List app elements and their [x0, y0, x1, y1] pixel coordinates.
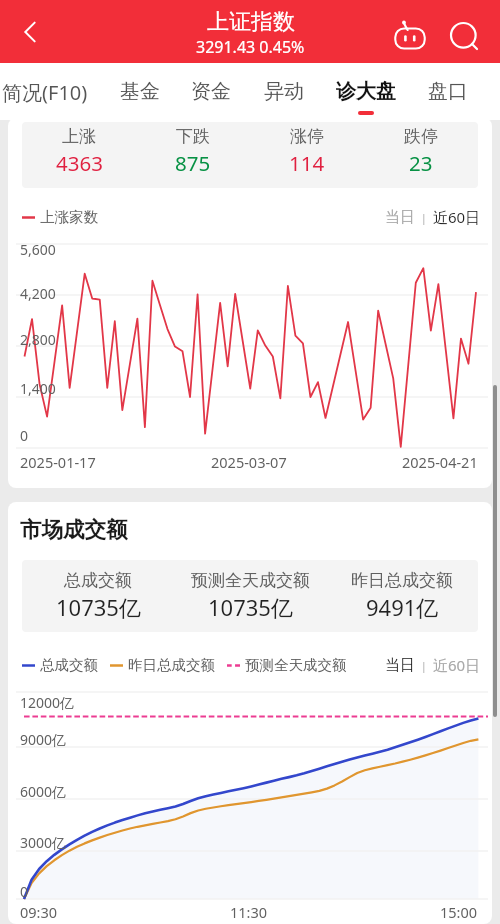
staticText: 3000亿 — [20, 833, 67, 852]
staticText: 15:00 — [440, 902, 478, 922]
staticText: 预测全天成交额 — [191, 570, 310, 591]
button[interactable]: 近60日 — [433, 655, 481, 675]
staticText: 基金 — [120, 79, 160, 104]
staticText: 上证指数 — [207, 8, 295, 36]
staticText: 当日 — [385, 208, 415, 227]
staticText: 11:30 — [230, 902, 268, 922]
button[interactable]: 诊大盘 — [330, 63, 402, 115]
staticText: 诊大盘 — [336, 79, 396, 104]
staticText: 市场成交额 — [20, 516, 128, 543]
staticText: 预测全天成交额 — [245, 656, 347, 674]
staticText: 2025-03-07 — [211, 452, 287, 472]
staticText: 0 — [20, 882, 29, 901]
staticText: 3291.43 0.45% — [196, 36, 305, 58]
staticText: 10735亿 — [208, 592, 293, 622]
staticText: 昨日总成交额 — [351, 570, 453, 591]
staticText: 异动 — [264, 79, 304, 104]
staticText: 2025-01-17 — [20, 452, 96, 472]
staticText: 当日 — [385, 656, 415, 675]
staticText: 上涨家数 — [40, 208, 98, 226]
staticText: 4363 — [56, 149, 103, 177]
staticText: 0 — [20, 426, 29, 445]
staticText: 4,200 — [20, 284, 56, 303]
staticText: 1,400 — [20, 379, 56, 398]
button[interactable]: AI assistant — [386, 0, 434, 63]
staticText: 总成交额 — [40, 656, 98, 674]
button[interactable]: 当日 — [385, 208, 415, 227]
staticText: 23 — [409, 149, 433, 177]
button[interactable]: 简况(F10) — [0, 63, 93, 115]
staticText: | — [415, 658, 433, 673]
staticText: 总成交额 — [64, 570, 132, 591]
button[interactable]: 异动 — [254, 63, 314, 115]
staticText: 5,600 — [20, 240, 56, 259]
staticText: 2,800 — [20, 330, 56, 349]
staticText: 昨日总成交额 — [128, 656, 215, 674]
button[interactable]: 基金 — [110, 63, 170, 115]
button[interactable]: 当日 — [385, 656, 415, 675]
staticText: 近60日 — [433, 207, 481, 227]
staticText: 跌停 — [404, 126, 438, 147]
staticText: | — [415, 210, 433, 225]
staticText: 9491亿 — [366, 592, 439, 622]
staticText: 简况(F10) — [2, 79, 88, 106]
staticText: 6000亿 — [20, 782, 67, 801]
button[interactable]: Search — [440, 5, 489, 68]
button[interactable]: 近60日 — [433, 207, 481, 227]
staticText: 12000亿 — [20, 693, 75, 712]
staticText: 涨停 — [290, 126, 324, 147]
button[interactable]: 资金 — [181, 63, 241, 115]
staticText: 10735亿 — [56, 592, 141, 622]
staticText: 875 — [175, 149, 211, 177]
staticText: 下跌 — [176, 126, 210, 147]
staticText: 近60日 — [433, 655, 481, 675]
staticText: 9000亿 — [20, 730, 67, 749]
button[interactable]: Back — [2, 0, 58, 63]
staticText: 114 — [289, 149, 325, 177]
staticText: 盘口 — [428, 79, 468, 104]
staticText: 09:30 — [20, 902, 58, 922]
button[interactable]: 盘口 — [418, 63, 478, 115]
staticText: 资金 — [191, 79, 231, 104]
staticText: 2025-04-21 — [402, 452, 478, 472]
staticText: 上涨 — [62, 126, 96, 147]
